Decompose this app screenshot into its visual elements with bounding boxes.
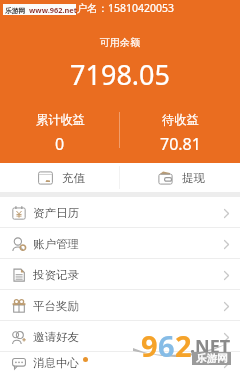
button[interactable]: 账户管理 bbox=[0, 228, 240, 259]
staticText: 消息中心 bbox=[33, 356, 79, 370]
button[interactable]: 平台奖励 bbox=[0, 290, 240, 321]
staticText: 邀请好友 bbox=[33, 330, 79, 344]
staticText: 2 bbox=[175, 326, 192, 365]
button[interactable]: 充值 bbox=[0, 163, 120, 192]
button[interactable]: 投资记录 bbox=[0, 259, 240, 290]
staticText: 6 bbox=[158, 326, 175, 365]
staticText: 9 bbox=[141, 326, 158, 365]
staticText: 可用余额 bbox=[0, 36, 240, 49]
staticText: 0 bbox=[55, 133, 65, 155]
staticText: 账户管理 bbox=[33, 237, 79, 251]
staticText: 投资记录 bbox=[33, 268, 79, 282]
staticText: www.962.net bbox=[29, 5, 77, 15]
staticText: 充值 bbox=[62, 171, 85, 185]
staticText: 累计收益 bbox=[36, 112, 85, 127]
staticText: 乐游网 bbox=[5, 6, 26, 15]
staticText: 乐游网 bbox=[196, 352, 228, 365]
staticText: 提现 bbox=[182, 171, 205, 185]
staticText: 70.81 bbox=[160, 133, 201, 155]
staticText: 用户名：15810420053 bbox=[0, 1, 240, 15]
staticText: 待收益 bbox=[162, 112, 199, 127]
button[interactable]: 消息中心 bbox=[0, 347, 240, 372]
button[interactable]: 提现 bbox=[120, 163, 240, 192]
staticText: 平台奖励 bbox=[33, 299, 79, 313]
button[interactable]: 邀请好友 bbox=[0, 321, 240, 352]
staticText: 资产日历 bbox=[33, 206, 79, 220]
button[interactable]: 资产日历 bbox=[0, 197, 240, 228]
staticText: 7198.05 bbox=[0, 56, 240, 93]
staticText: .NET bbox=[190, 334, 231, 359]
